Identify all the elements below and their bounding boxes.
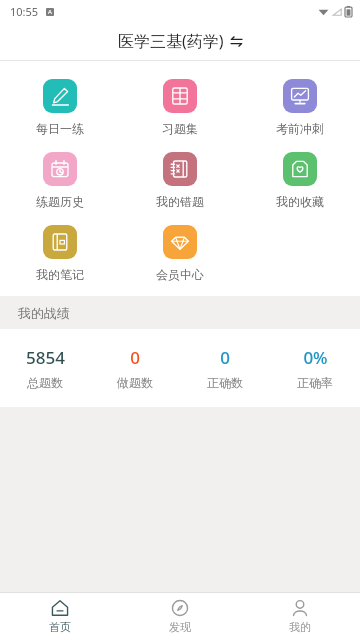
button[interactable]: 0 [180, 346, 270, 390]
staticText: 首页 [49, 620, 71, 634]
staticText: 每日一练 [36, 121, 84, 136]
button[interactable]: 5854 [0, 346, 90, 390]
button[interactable]: 0 [90, 346, 180, 390]
staticText: A [48, 8, 52, 16]
other: Switch subject [230, 35, 243, 48]
staticText: 0 [220, 346, 230, 369]
button[interactable]: 我的笔记 [0, 217, 120, 290]
staticText: 习题集 [162, 121, 198, 136]
button[interactable]: 发现 [120, 593, 240, 640]
staticText: 正确数 [207, 375, 243, 390]
button[interactable]: 我的错题 [120, 144, 240, 217]
staticText: 做题数 [117, 375, 153, 390]
button[interactable]: 习题集 [120, 71, 240, 144]
staticText: 5854 [26, 346, 65, 369]
staticText: 我的错题 [156, 194, 204, 209]
staticText: 我的 [289, 620, 311, 634]
button[interactable]: 0% [270, 346, 360, 390]
button[interactable]: 考前冲刺 [240, 71, 360, 144]
button[interactable]: 首页 [0, 593, 120, 640]
button[interactable]: 练题历史 [0, 144, 120, 217]
button[interactable]: 我的收藏 [240, 144, 360, 217]
button[interactable]: 我的 [240, 593, 360, 640]
staticText: 正确率 [297, 375, 333, 390]
staticText: 0% [303, 346, 328, 369]
staticText: 考前冲刺 [276, 121, 324, 136]
staticText: 我的笔记 [36, 267, 84, 282]
staticText: 我的战绩 [18, 305, 70, 321]
button[interactable]: 会员中心 [120, 217, 240, 290]
staticText: 发现 [169, 620, 191, 634]
staticText: 会员中心 [156, 267, 204, 282]
staticText: 0 [130, 346, 140, 369]
staticText: 10:55 [10, 4, 39, 19]
staticText: 我的收藏 [276, 194, 324, 209]
staticText: 医学三基(药学) [118, 30, 224, 52]
staticText: 练题历史 [36, 194, 84, 209]
button[interactable]: 每日一练 [0, 71, 120, 144]
staticText: 总题数 [27, 375, 63, 390]
button[interactable]: 医学三基(药学) [110, 26, 251, 56]
